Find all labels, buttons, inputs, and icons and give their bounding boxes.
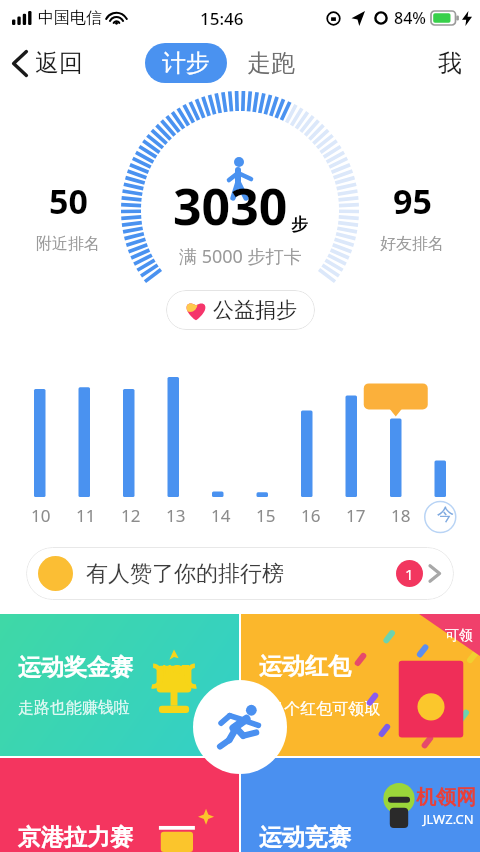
staticText: 计步 bbox=[162, 48, 210, 78]
button[interactable]: 京港拉力赛 bbox=[0, 758, 239, 852]
button[interactable]: 运动红包 bbox=[241, 614, 480, 756]
staticText: 走路也能赚钱啦 bbox=[18, 698, 130, 718]
staticText: 95 bbox=[393, 178, 432, 224]
staticText: 运动奖金赛 bbox=[18, 653, 133, 682]
staticText: 11 bbox=[76, 504, 96, 527]
staticText: 10 bbox=[31, 504, 51, 527]
staticText: 运动红包 bbox=[259, 652, 351, 681]
staticText: 有1个红包可领取 bbox=[259, 697, 381, 719]
staticText: 我 bbox=[438, 48, 462, 78]
button[interactable]: 我 bbox=[420, 42, 480, 84]
staticText: JLWZ.CN bbox=[423, 810, 474, 828]
button[interactable]: 开始跑步 bbox=[193, 680, 287, 774]
button[interactable]: 有人赞了你的排行榜 bbox=[26, 547, 454, 600]
staticText: 附近排名 bbox=[36, 234, 100, 254]
staticText: 步 bbox=[291, 214, 308, 235]
staticText: 1 bbox=[405, 564, 414, 584]
button[interactable]: 运动奖金赛 bbox=[0, 614, 239, 756]
staticText: 可领 bbox=[445, 627, 473, 645]
staticText: 公益捐步 bbox=[213, 297, 297, 323]
staticText: 84% bbox=[394, 7, 426, 29]
staticText: 17 bbox=[346, 504, 366, 527]
staticText: 中国电信 bbox=[38, 8, 102, 28]
staticText: 15:46 bbox=[200, 7, 244, 30]
staticText: 好友排名 bbox=[380, 234, 444, 254]
staticText: 16 bbox=[301, 504, 321, 527]
button[interactable]: 返回 bbox=[0, 42, 95, 84]
staticText: 满 5000 步打卡 bbox=[179, 244, 302, 269]
staticText: 返回 bbox=[35, 48, 83, 78]
button[interactable]: 公益捐步 bbox=[166, 290, 315, 330]
button[interactable]: 运动竞赛 bbox=[241, 758, 480, 852]
staticText: 机领网 bbox=[416, 785, 476, 810]
staticText: 运动竞赛 bbox=[259, 823, 351, 852]
staticText: 走跑 bbox=[247, 48, 295, 78]
staticText: 15 bbox=[256, 504, 276, 527]
staticText: 有人赞了你的排行榜 bbox=[86, 560, 284, 588]
staticText: 14 bbox=[211, 504, 231, 527]
staticText: 今 bbox=[437, 504, 454, 525]
button[interactable]: 计步 bbox=[145, 43, 227, 83]
button[interactable]: 走跑 bbox=[241, 43, 301, 83]
staticText: HOT bbox=[162, 660, 190, 678]
staticText: 18 bbox=[391, 504, 411, 527]
staticText: 50 bbox=[49, 178, 88, 224]
staticText: 12 bbox=[121, 504, 141, 527]
staticText: 京港拉力赛 bbox=[18, 823, 133, 852]
staticText: 3030 bbox=[173, 172, 288, 240]
staticText: 13 bbox=[166, 504, 186, 527]
